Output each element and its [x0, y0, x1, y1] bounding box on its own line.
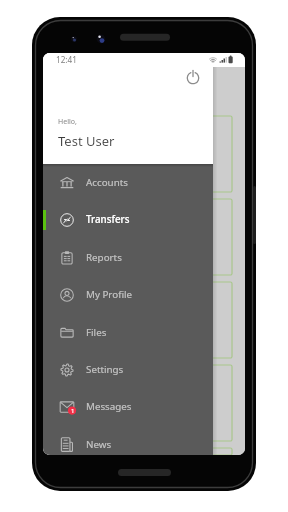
staticText: 12:41: [56, 54, 77, 65]
button[interactable]: Power: [180, 65, 206, 91]
staticText: Files: [86, 326, 107, 339]
button[interactable]: Accounts: [43, 164, 213, 201]
staticText: My Profile: [86, 288, 133, 301]
staticText: Accounts: [86, 176, 128, 189]
button[interactable]: My Profile: [43, 276, 213, 313]
button[interactable]: 1: [43, 388, 213, 425]
button[interactable]: Transfers: [43, 201, 213, 238]
staticText: News: [86, 438, 112, 451]
button[interactable]: Files: [43, 314, 213, 351]
staticText: Reports: [86, 251, 122, 264]
staticText: Settings: [86, 363, 124, 376]
staticText: Messages: [86, 400, 132, 413]
staticText: Test User: [58, 132, 115, 150]
button[interactable]: Settings: [43, 351, 213, 388]
button[interactable]: News: [43, 426, 213, 455]
button[interactable]: Reports: [43, 239, 213, 276]
staticText: Transfers: [86, 213, 130, 226]
staticText: Hello,: [58, 117, 77, 127]
staticText: 1: [71, 407, 75, 415]
